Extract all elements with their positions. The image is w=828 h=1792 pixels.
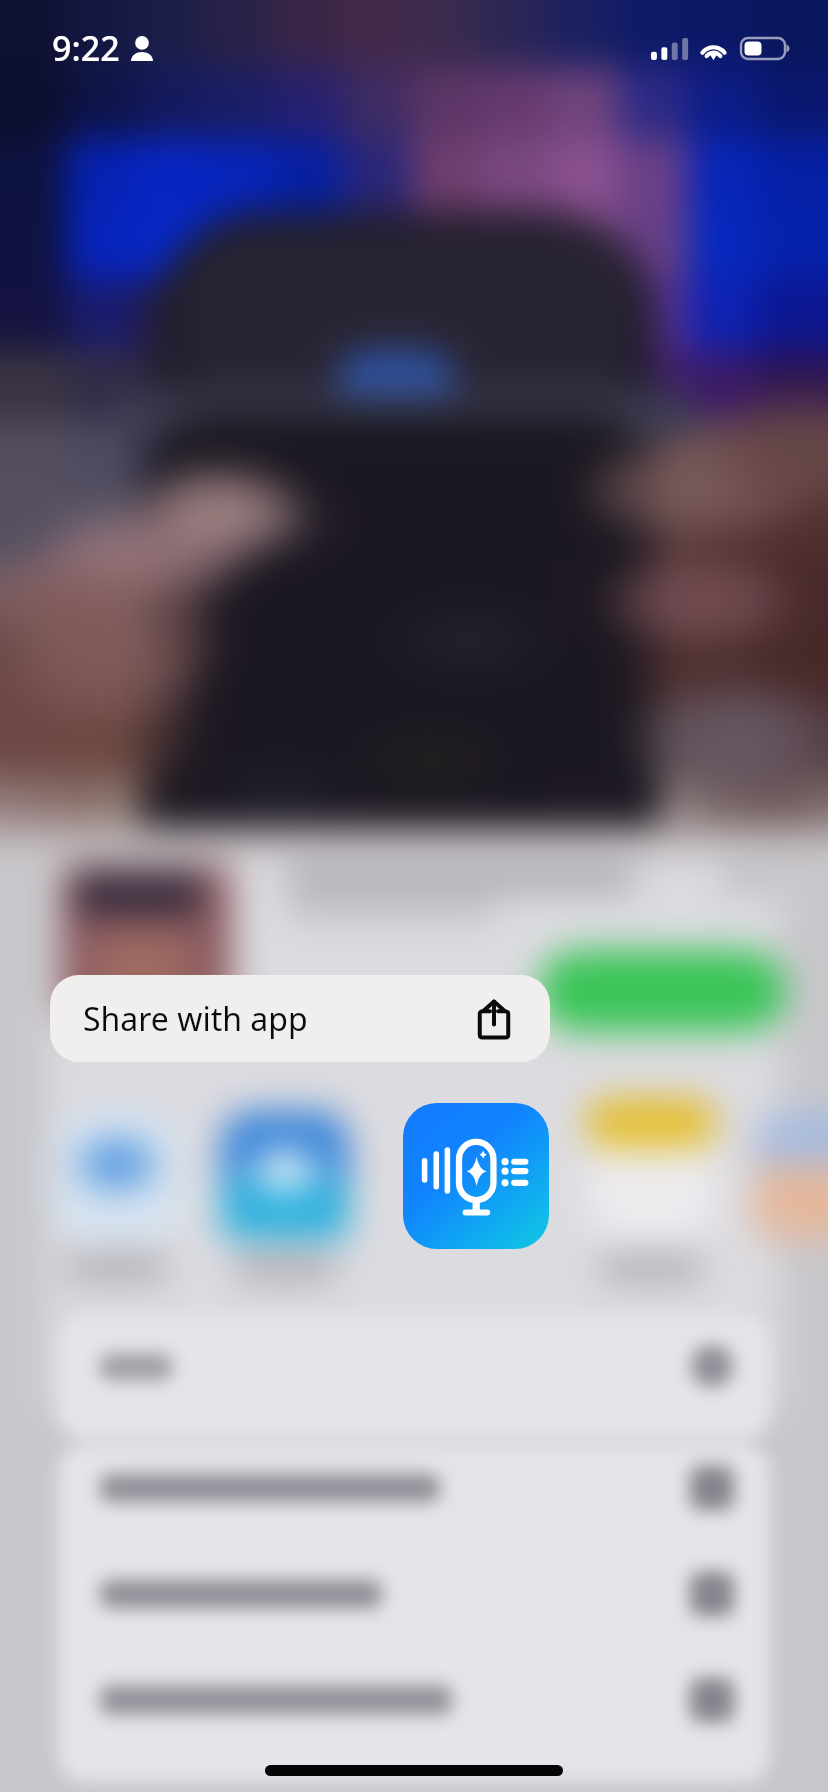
staticText: 9:22 [52,25,120,71]
staticText: Share with app [83,997,308,1041]
button[interactable]: Share with app [50,975,550,1062]
button[interactable]: Voice memo app [403,1103,549,1249]
